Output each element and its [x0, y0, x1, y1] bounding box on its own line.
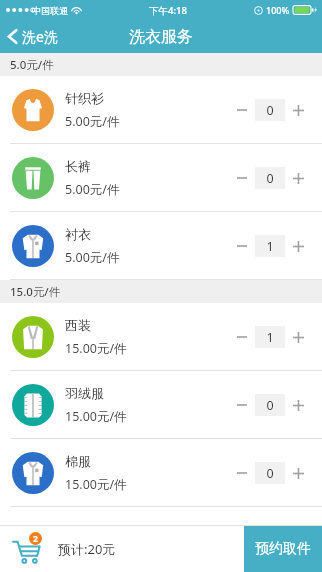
- staticText: 15.00元/件: [65, 340, 127, 357]
- button[interactable]: Decrease quantity: [229, 394, 255, 416]
- staticText: 衬衣: [65, 226, 91, 242]
- button[interactable]: Decrease quantity: [229, 235, 255, 257]
- staticText: 100%: [266, 4, 290, 16]
- button[interactable]: Increase quantity: [285, 326, 311, 348]
- button[interactable]: Decrease quantity: [229, 167, 255, 189]
- staticText: 15.00元/件: [65, 408, 127, 425]
- staticText: 0: [266, 397, 274, 414]
- staticText: 1: [266, 329, 274, 346]
- staticText: 西装: [65, 317, 91, 333]
- staticText: 棉服: [65, 453, 91, 469]
- staticText: 中国联通: [32, 5, 68, 16]
- button[interactable]: 羽绒服: [0, 371, 322, 438]
- button[interactable]: Increase quantity: [285, 394, 311, 416]
- button[interactable]: 洗e洗: [0, 20, 68, 53]
- staticText: 洗e洗: [22, 27, 58, 46]
- staticText: 羽绒服: [65, 385, 104, 401]
- staticText: 5.0元/件: [10, 57, 54, 73]
- staticText: 15.0元/件: [10, 284, 61, 300]
- staticText: 洗衣服务: [129, 27, 193, 47]
- button[interactable]: Shopping cart, 2 items: [10, 532, 44, 566]
- button[interactable]: Increase quantity: [285, 99, 311, 121]
- button[interactable]: Decrease quantity: [229, 326, 255, 348]
- button[interactable]: 衬衣: [0, 212, 322, 279]
- staticText: 预计:20元: [58, 540, 116, 558]
- button[interactable]: Increase quantity: [285, 167, 311, 189]
- staticText: 5.00元/件: [65, 181, 120, 198]
- staticText: 0: [266, 170, 274, 187]
- button[interactable]: 西装: [0, 303, 322, 370]
- button[interactable]: 长裤: [0, 144, 322, 211]
- staticText: 1: [266, 238, 274, 255]
- staticText: 0: [266, 102, 274, 119]
- button[interactable]: 预约取件: [244, 526, 322, 572]
- staticText: 下午4:18: [149, 4, 187, 17]
- staticText: 2: [33, 533, 38, 545]
- button[interactable]: 棉服: [0, 439, 322, 506]
- staticText: 5.00元/件: [65, 113, 120, 130]
- button[interactable]: Increase quantity: [285, 235, 311, 257]
- staticText: 5.00元/件: [65, 249, 120, 266]
- staticText: 长裤: [65, 158, 91, 174]
- button[interactable]: Increase quantity: [285, 462, 311, 484]
- staticText: 0: [266, 465, 274, 482]
- button[interactable]: Decrease quantity: [229, 462, 255, 484]
- button[interactable]: 针织衫: [0, 76, 322, 143]
- staticText: 预约取件: [255, 540, 311, 558]
- button[interactable]: Decrease quantity: [229, 99, 255, 121]
- staticText: 针织衫: [65, 90, 104, 106]
- staticText: 15.00元/件: [65, 476, 127, 493]
